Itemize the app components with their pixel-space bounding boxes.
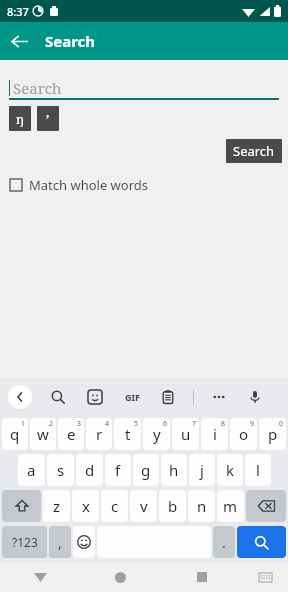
button[interactable]: e — [58, 418, 84, 450]
button[interactable]: ?123 — [2, 526, 47, 558]
button[interactable]: Switch keyboard — [242, 562, 288, 592]
button[interactable]: y — [143, 418, 170, 450]
staticText: ?123 — [12, 534, 38, 550]
staticText: e — [67, 424, 76, 444]
staticText: ’ — [46, 110, 50, 128]
button[interactable]: z — [43, 490, 70, 522]
button[interactable]: i — [201, 418, 228, 450]
staticText: 8:37 — [7, 4, 29, 19]
staticText: 0 — [279, 419, 284, 429]
button[interactable]: Home — [80, 562, 161, 592]
staticText: 4 — [105, 419, 110, 429]
button[interactable]: g — [133, 454, 159, 486]
staticText: n — [197, 496, 207, 516]
staticText: j — [200, 460, 204, 480]
staticText: Search — [233, 142, 275, 160]
button[interactable]: j — [189, 454, 215, 486]
button[interactable]: v — [130, 490, 157, 522]
staticText: o — [239, 424, 249, 444]
staticText: k — [226, 460, 235, 480]
button[interactable]: . — [213, 526, 235, 558]
button[interactable]: q — [2, 418, 28, 450]
button[interactable]: Voice input — [244, 386, 266, 408]
staticText: z — [53, 496, 61, 516]
staticText: c — [111, 496, 119, 516]
staticText: Match whole words — [29, 176, 149, 194]
button[interactable]: n — [188, 490, 215, 522]
button[interactable]: Back — [0, 22, 38, 60]
button[interactable]: c — [101, 490, 128, 522]
button[interactable]: Clipboard — [157, 386, 179, 408]
staticText: r — [96, 424, 103, 444]
button[interactable]: Search — [226, 139, 282, 163]
staticText: a — [27, 460, 36, 480]
staticText: w — [37, 424, 49, 444]
button[interactable]: Search — [9, 76, 279, 100]
staticText: 7 — [192, 419, 197, 429]
button[interactable]: d — [76, 454, 103, 486]
button[interactable]: w — [30, 418, 56, 450]
button[interactable]: Search — [237, 526, 286, 558]
staticText: ŋ — [16, 110, 25, 128]
staticText: . — [222, 533, 226, 552]
button[interactable]: GIF — [121, 386, 143, 408]
button[interactable]: Stickers — [84, 386, 106, 408]
button[interactable]: s — [47, 454, 74, 486]
staticText: m — [223, 496, 238, 516]
staticText: 5 — [134, 419, 139, 429]
staticText: 6 — [163, 419, 168, 429]
button[interactable]: h — [161, 454, 187, 486]
button[interactable]: Collapse toolbar — [8, 385, 32, 409]
button[interactable]: m — [217, 490, 244, 522]
button[interactable]: ŋ — [9, 106, 31, 131]
staticText: x — [82, 496, 90, 516]
button[interactable]: Emoji — [73, 526, 95, 558]
button[interactable]: k — [217, 454, 243, 486]
button[interactable]: t — [114, 418, 141, 450]
staticText: 1 — [21, 419, 26, 429]
button[interactable]: f — [105, 454, 131, 486]
button[interactable]: o — [230, 418, 257, 450]
button[interactable]: l — [245, 454, 271, 486]
staticText: t — [125, 424, 131, 444]
button[interactable]: b — [159, 490, 186, 522]
button[interactable]: Back — [0, 562, 80, 592]
button[interactable]: Recents — [161, 562, 242, 592]
button[interactable]: Match whole words — [0, 173, 288, 197]
staticText: 9 — [250, 419, 255, 429]
staticText: Search — [13, 78, 62, 98]
button[interactable]: , — [49, 526, 71, 558]
button[interactable]: u — [172, 418, 199, 450]
staticText: 2 — [49, 419, 54, 429]
staticText: 8 — [221, 419, 226, 429]
staticText: f — [115, 460, 121, 480]
button[interactable]: Shift — [2, 490, 41, 522]
staticText: p — [268, 424, 278, 444]
staticText: q — [10, 424, 20, 444]
staticText: g — [141, 460, 151, 480]
staticText: 3 — [77, 419, 82, 429]
staticText: s — [57, 460, 65, 480]
staticText: u — [181, 424, 191, 444]
button[interactable]: Search — [47, 386, 69, 408]
button[interactable]: r — [86, 418, 112, 450]
staticText: b — [168, 496, 178, 516]
staticText: i — [213, 424, 217, 444]
staticText: y — [153, 424, 161, 444]
staticText: l — [256, 460, 260, 480]
staticText: d — [85, 460, 95, 480]
staticText: , — [58, 533, 62, 552]
staticText: GIF — [125, 391, 140, 403]
button[interactable]: p — [259, 418, 286, 450]
button[interactable]: Backspace — [246, 490, 286, 522]
staticText: Search — [45, 31, 96, 51]
button[interactable]: More options — [208, 386, 230, 408]
button[interactable]: a — [18, 454, 45, 486]
staticText: v — [140, 496, 148, 516]
button[interactable]: ’ — [37, 106, 59, 131]
button[interactable]: x — [72, 490, 99, 522]
staticText: h — [169, 460, 179, 480]
